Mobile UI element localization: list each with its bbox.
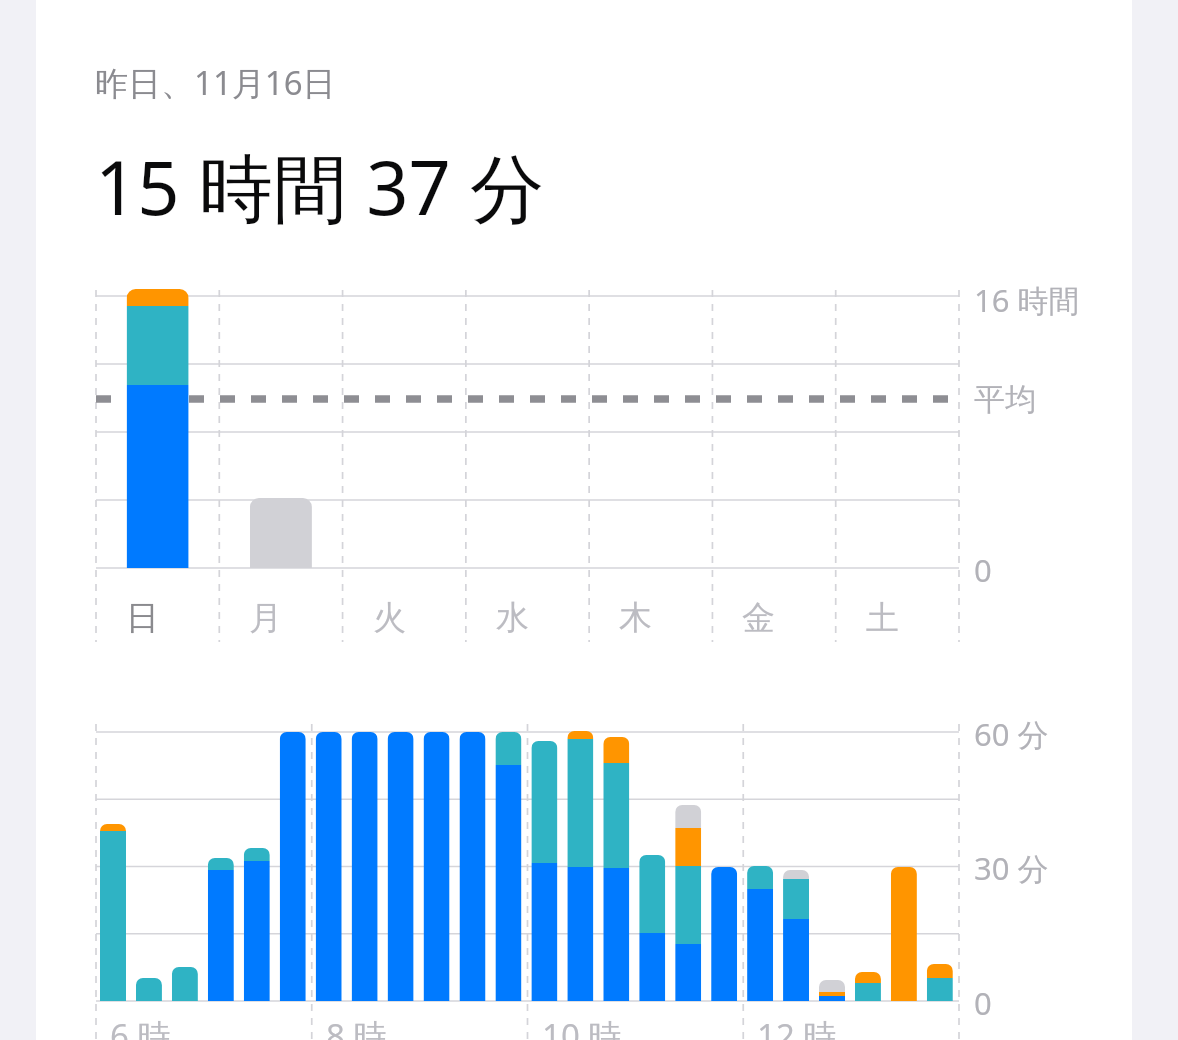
button[interactable]: Screen time detail chart	[0, 0, 1178, 1040]
staticText: 水	[496, 597, 529, 639]
staticText: 木	[619, 597, 652, 639]
staticText: 昨日、11月16日	[95, 60, 336, 105]
staticText: 60 分	[974, 713, 1049, 755]
staticText: 16 時間	[974, 279, 1080, 321]
staticText: 金	[742, 597, 775, 639]
staticText: 12 時	[757, 1013, 837, 1040]
staticText: 火	[373, 597, 406, 639]
staticText: 月	[249, 597, 282, 639]
staticText: 平均	[974, 380, 1036, 419]
staticText: 日	[126, 597, 159, 639]
staticText: 10 時	[542, 1013, 622, 1040]
staticText: 8 時	[326, 1013, 387, 1040]
staticText: 6 時	[110, 1013, 171, 1040]
staticText: 0	[974, 982, 992, 1024]
staticText: 土	[866, 597, 899, 639]
staticText: 15 時間 37 分	[95, 136, 545, 237]
staticText: 0	[974, 549, 992, 591]
staticText: 30 分	[974, 847, 1049, 889]
